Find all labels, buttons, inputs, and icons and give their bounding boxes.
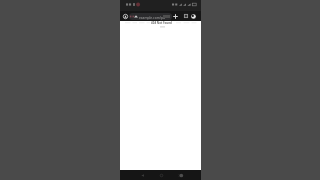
staticText: example.com/pa [139, 15, 165, 19]
button[interactable]: Home [121, 11, 130, 21]
button[interactable]: Home [155, 170, 167, 180]
button[interactable]: Back [136, 170, 148, 180]
button[interactable]: New tab [171, 11, 180, 21]
button[interactable]: Tabs [181, 11, 190, 21]
button[interactable]: example.com/pa [129, 13, 172, 20]
staticText: 404 Not Found [151, 21, 172, 25]
button[interactable]: Account [189, 11, 198, 21]
button[interactable]: Recent apps [174, 170, 186, 180]
